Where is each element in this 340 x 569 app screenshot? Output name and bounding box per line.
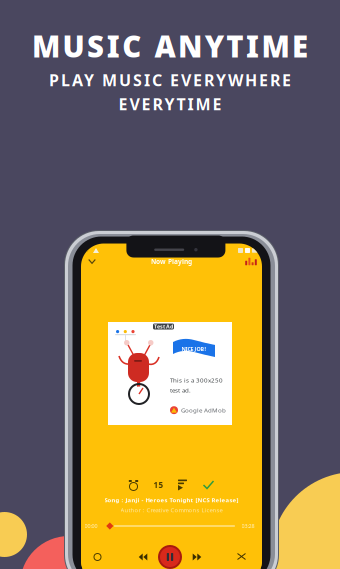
button[interactable]: Equalizer [243, 254, 259, 268]
staticText: NICE JOB! [181, 345, 206, 353]
button[interactable]: Previous track [136, 551, 150, 563]
staticText: test ad. [170, 386, 191, 394]
button[interactable]: Pause [157, 544, 183, 569]
staticText: 03:28 [241, 522, 254, 530]
staticText: MUSIC ANYTIME [32, 26, 308, 65]
staticText: PLAY MUSIC EVERYWHERE [49, 69, 291, 91]
button[interactable]: Forward 15 seconds [150, 478, 166, 492]
staticText: Now Playing [151, 257, 192, 266]
button[interactable]: Sleep timer [125, 478, 141, 492]
button[interactable]: Downloaded [200, 478, 216, 492]
button[interactable]: Repeat [90, 550, 104, 564]
button[interactable]: Collapse player [84, 254, 100, 268]
staticText: This is a 300x250 [170, 376, 223, 384]
staticText: Google AdMob [181, 406, 226, 414]
staticText: EVERYTIME [118, 93, 221, 115]
staticText: Test Ad [154, 323, 173, 330]
button[interactable]: Next track [190, 551, 204, 563]
button[interactable]: Playback queue [175, 478, 191, 492]
staticText: 00:00 [85, 522, 98, 530]
staticText: 15 [153, 480, 163, 490]
staticText: Song : Janji - Heroes Tonight [NCS Relea… [104, 496, 238, 504]
staticText: Author : Creative Commons License [120, 506, 222, 514]
button[interactable]: Shuffle [235, 550, 249, 564]
